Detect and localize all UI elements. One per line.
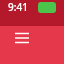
- staticText: 9:41: [8, 0, 28, 14]
- button[interactable]: Menu: [10, 26, 34, 50]
